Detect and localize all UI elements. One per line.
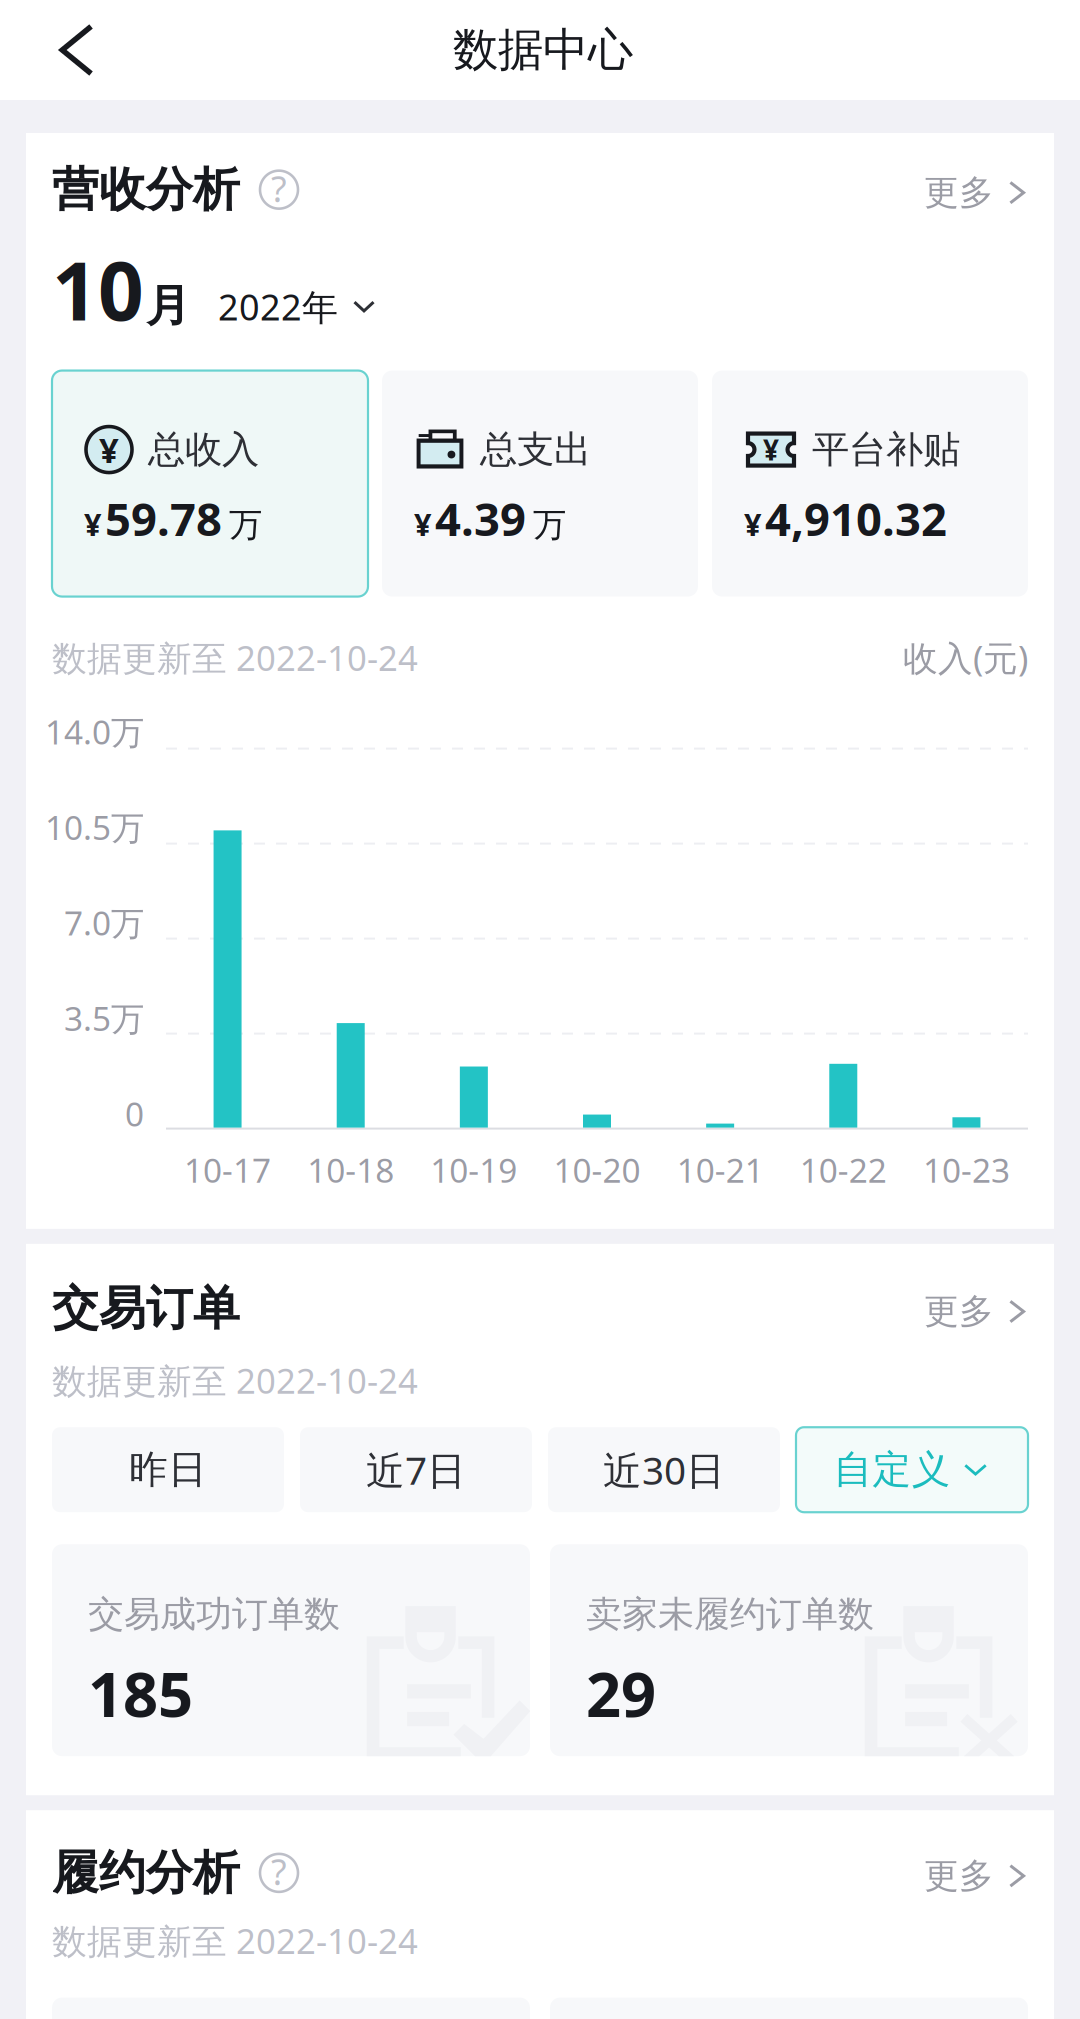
staticText: 10-22 (800, 1148, 887, 1192)
staticText: 10.5万 (45, 805, 144, 849)
staticText: 0 (125, 1091, 144, 1136)
button[interactable]: 2022年 (190, 283, 378, 330)
staticText: 总收入 (148, 427, 259, 472)
button[interactable]: 更多 (924, 161, 1028, 218)
staticText: 10-18 (307, 1148, 394, 1192)
staticText: 3.5万 (64, 996, 144, 1040)
staticText: 14.0万 (45, 709, 144, 754)
staticText: 数据更新至 2022-10-24 (52, 1357, 418, 1403)
staticText: 自定义 (833, 1446, 950, 1493)
button[interactable]: 昨日 (52, 1427, 284, 1512)
staticText: 近7日 (366, 1444, 466, 1495)
staticText: 10-23 (923, 1148, 1010, 1192)
staticText: 收入(元) (903, 635, 1028, 681)
staticText: ¥ (414, 504, 432, 544)
staticText: 2022年 (218, 283, 338, 330)
staticText: 卖家未履约订单数 (586, 1592, 874, 1636)
staticText: 185 (88, 1652, 193, 1734)
staticText: 数据更新至 2022-10-24 (52, 635, 418, 681)
button[interactable]: 近30日 (548, 1427, 780, 1512)
staticText: 更多 (924, 171, 994, 214)
staticText: 营收分析 (52, 161, 240, 218)
staticText: 10 (52, 236, 144, 342)
staticText: 月 (146, 279, 190, 333)
staticText: 更多 (924, 1290, 994, 1333)
staticText: 59.78 (105, 488, 222, 549)
staticText: ¥ (744, 504, 762, 544)
button[interactable]: 说明 (260, 171, 298, 209)
staticText: 履约分析 (52, 1844, 240, 1901)
button[interactable]: 更多 (924, 1845, 1028, 1901)
staticText: 万 (229, 504, 262, 545)
staticText: 交易订单 (52, 1280, 240, 1337)
staticText: 4.39 (435, 488, 526, 549)
button[interactable]: 返回 (0, 5, 122, 95)
staticText: 10-17 (184, 1148, 271, 1192)
button[interactable]: ¥ (52, 371, 368, 597)
staticText: 交易成功订单数 (88, 1592, 340, 1636)
button[interactable]: 近7日 (300, 1427, 532, 1512)
button[interactable]: 自定义 (796, 1427, 1028, 1512)
staticText: ? (271, 164, 287, 212)
staticText: ¥ (763, 431, 779, 468)
staticText: 平台补贴 (812, 427, 960, 472)
staticText: 10-19 (430, 1148, 517, 1192)
staticText: 更多 (924, 1855, 994, 1897)
staticText: ¥ (84, 504, 102, 544)
staticText: 近30日 (603, 1444, 725, 1495)
staticText: 29 (586, 1652, 656, 1734)
staticText: 10-21 (677, 1148, 764, 1192)
button[interactable]: 说明 (260, 1854, 298, 1892)
staticText: ¥ (99, 426, 119, 472)
staticText: 万 (533, 504, 566, 545)
staticText: 7.0万 (64, 900, 144, 945)
staticText: 昨日 (129, 1446, 207, 1493)
button[interactable]: 更多 (924, 1280, 1028, 1337)
staticText: ? (271, 1847, 287, 1895)
button[interactable]: ¥ (712, 371, 1028, 597)
staticText: 数据中心 (453, 22, 633, 78)
staticText: 4,910.32 (765, 488, 947, 549)
staticText: 数据更新至 2022-10-24 (52, 1917, 418, 1963)
staticText: 总支出 (480, 427, 591, 472)
staticText: 10-20 (553, 1148, 640, 1192)
button[interactable]: 总支出 (382, 371, 698, 597)
